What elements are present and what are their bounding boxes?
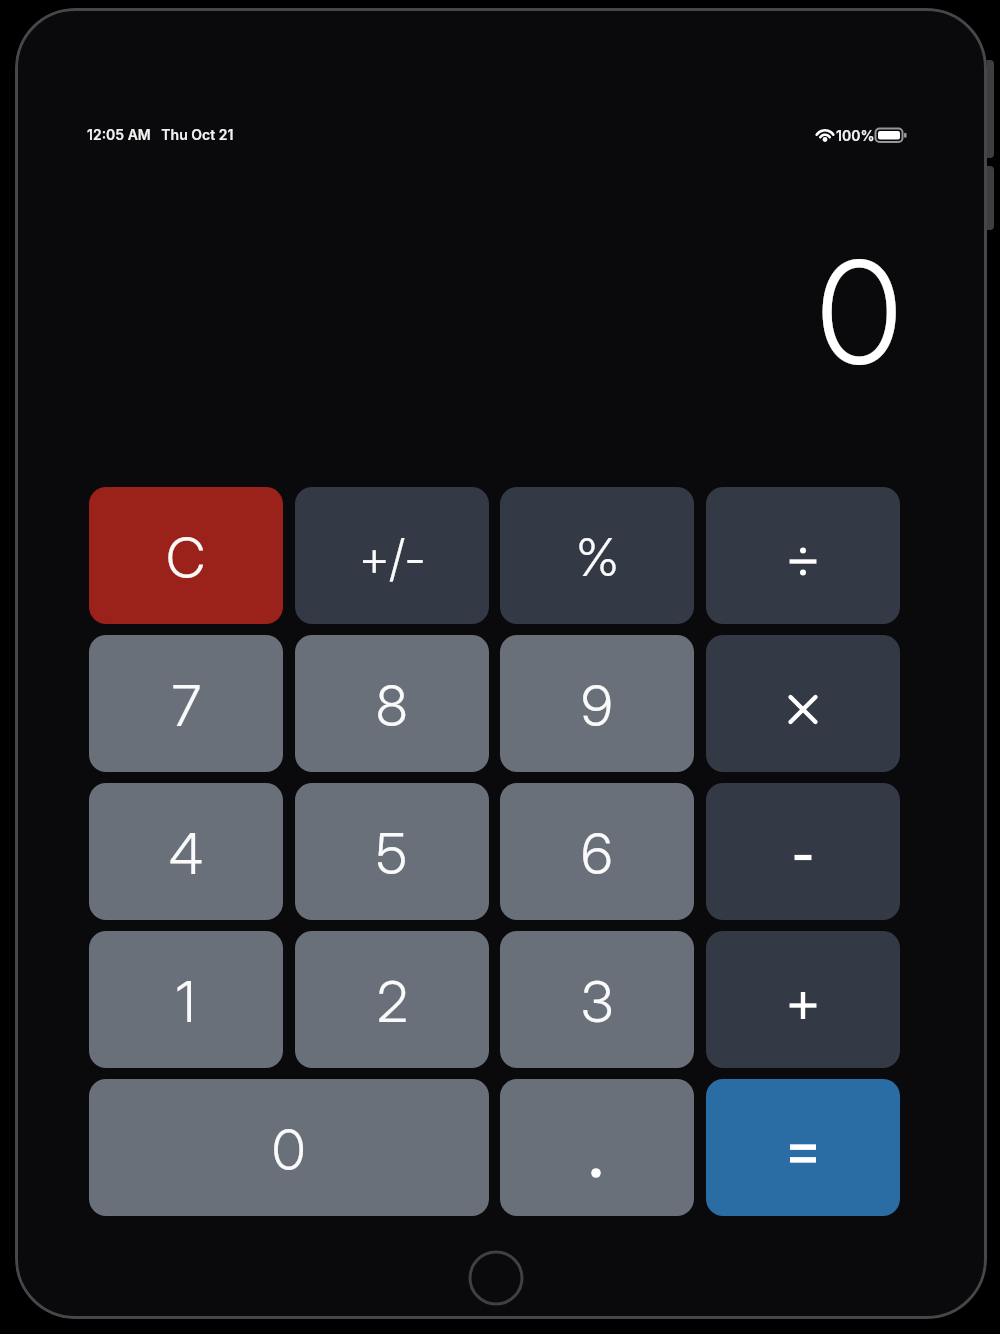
staticText: %	[576, 526, 619, 589]
staticText: 100%	[836, 127, 875, 144]
staticText: 5	[376, 820, 408, 888]
button[interactable]	[706, 931, 900, 1068]
staticText: 2	[377, 968, 408, 1036]
button[interactable]: 1	[89, 931, 283, 1068]
staticText: 0	[272, 1116, 306, 1184]
staticText: 6	[581, 820, 613, 888]
staticText: C	[166, 524, 206, 592]
staticText: 1	[176, 968, 196, 1036]
staticText: +/-	[359, 528, 426, 588]
button[interactable]: 6	[500, 783, 694, 920]
button[interactable]: 3	[500, 931, 694, 1068]
button[interactable]: 7	[89, 635, 283, 772]
staticText: 8	[376, 672, 408, 740]
button[interactable]: %	[500, 487, 694, 624]
button[interactable]: 4	[89, 783, 283, 920]
button[interactable]	[706, 635, 900, 772]
button[interactable]: 0	[89, 1079, 489, 1216]
button[interactable]	[706, 783, 900, 920]
button[interactable]	[706, 1079, 900, 1216]
button[interactable]: C	[89, 487, 283, 624]
button[interactable]	[706, 487, 900, 624]
staticText: 12:05 AM Thu Oct 21	[87, 126, 234, 143]
button[interactable]: 5	[295, 783, 489, 920]
staticText: 3	[581, 968, 614, 1036]
button[interactable]: 2	[295, 931, 489, 1068]
staticText: 7	[172, 672, 201, 740]
button[interactable]	[500, 1079, 694, 1216]
staticText: 9	[581, 672, 613, 740]
button[interactable]: 9	[500, 635, 694, 772]
button[interactable]: 8	[295, 635, 489, 772]
staticText: 4	[169, 820, 203, 888]
button[interactable]: +/-	[295, 487, 489, 624]
staticText: 0	[817, 226, 902, 398]
